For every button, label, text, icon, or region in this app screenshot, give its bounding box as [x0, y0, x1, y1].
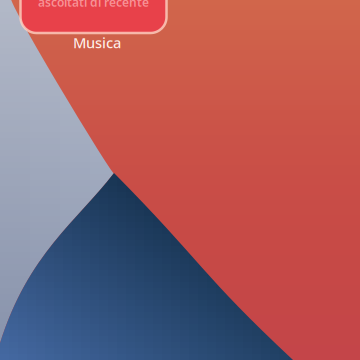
staticText: Musica	[73, 33, 121, 52]
button[interactable]: Widget Musica	[20, 0, 166, 33]
staticText: ascoltati di recente	[38, 0, 149, 10]
